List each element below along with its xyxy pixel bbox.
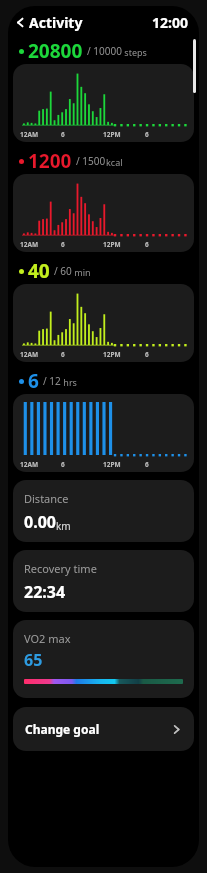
- staticText: Activity: [29, 13, 83, 32]
- staticText: / 10000: [87, 44, 122, 58]
- staticText: 12AM: [20, 130, 39, 139]
- button[interactable]: Distance: [13, 480, 194, 542]
- staticText: 65: [24, 649, 43, 671]
- button[interactable]: 12AM: [13, 174, 194, 252]
- staticText: 6: [145, 240, 149, 249]
- staticText: 6: [61, 130, 65, 139]
- staticText: 6: [145, 460, 149, 469]
- staticText: 6: [28, 368, 39, 394]
- staticText: 12AM: [20, 350, 39, 359]
- button[interactable]: Change goal: [13, 707, 194, 751]
- staticText: 1200: [28, 148, 72, 174]
- staticText: 20800: [28, 38, 83, 64]
- button[interactable]: 20800: [13, 38, 194, 64]
- button[interactable]: 6: [13, 368, 194, 394]
- staticText: 6: [61, 350, 65, 359]
- staticText: 6: [61, 240, 65, 249]
- staticText: 6: [145, 130, 149, 139]
- staticText: min: [72, 266, 91, 278]
- staticText: / 60: [54, 264, 72, 278]
- button[interactable]: Back: [15, 13, 83, 32]
- button[interactable]: Recovery time: [13, 550, 194, 612]
- button[interactable]: 1200: [13, 148, 194, 174]
- staticText: 0.00: [24, 511, 56, 533]
- staticText: 6: [61, 460, 65, 469]
- staticText: km: [56, 519, 71, 533]
- button[interactable]: 40: [13, 258, 194, 284]
- staticText: / 12: [43, 374, 61, 388]
- staticText: 12PM: [103, 240, 121, 249]
- button[interactable]: VO2 max: [13, 620, 194, 698]
- staticText: Recovery time: [24, 561, 97, 576]
- staticText: Change goal: [25, 721, 100, 737]
- staticText: hrs: [61, 376, 77, 388]
- staticText: 12:00: [152, 13, 188, 32]
- button[interactable]: 12AM: [13, 284, 194, 362]
- staticText: 12PM: [103, 130, 121, 139]
- staticText: 12PM: [103, 350, 121, 359]
- staticText: 12PM: [103, 460, 121, 469]
- staticText: steps: [122, 46, 147, 58]
- staticText: 40: [28, 258, 50, 284]
- staticText: 6: [145, 350, 149, 359]
- staticText: kcal: [106, 156, 123, 168]
- button[interactable]: 12AM: [13, 64, 194, 142]
- staticText: VO2 max: [24, 631, 71, 646]
- staticText: / 1500: [76, 154, 106, 168]
- staticText: 12AM: [20, 240, 39, 249]
- staticText: Distance: [24, 491, 69, 506]
- staticText: 12AM: [20, 460, 39, 469]
- button[interactable]: 12AM: [13, 394, 194, 472]
- staticText: 22:34: [24, 581, 66, 603]
